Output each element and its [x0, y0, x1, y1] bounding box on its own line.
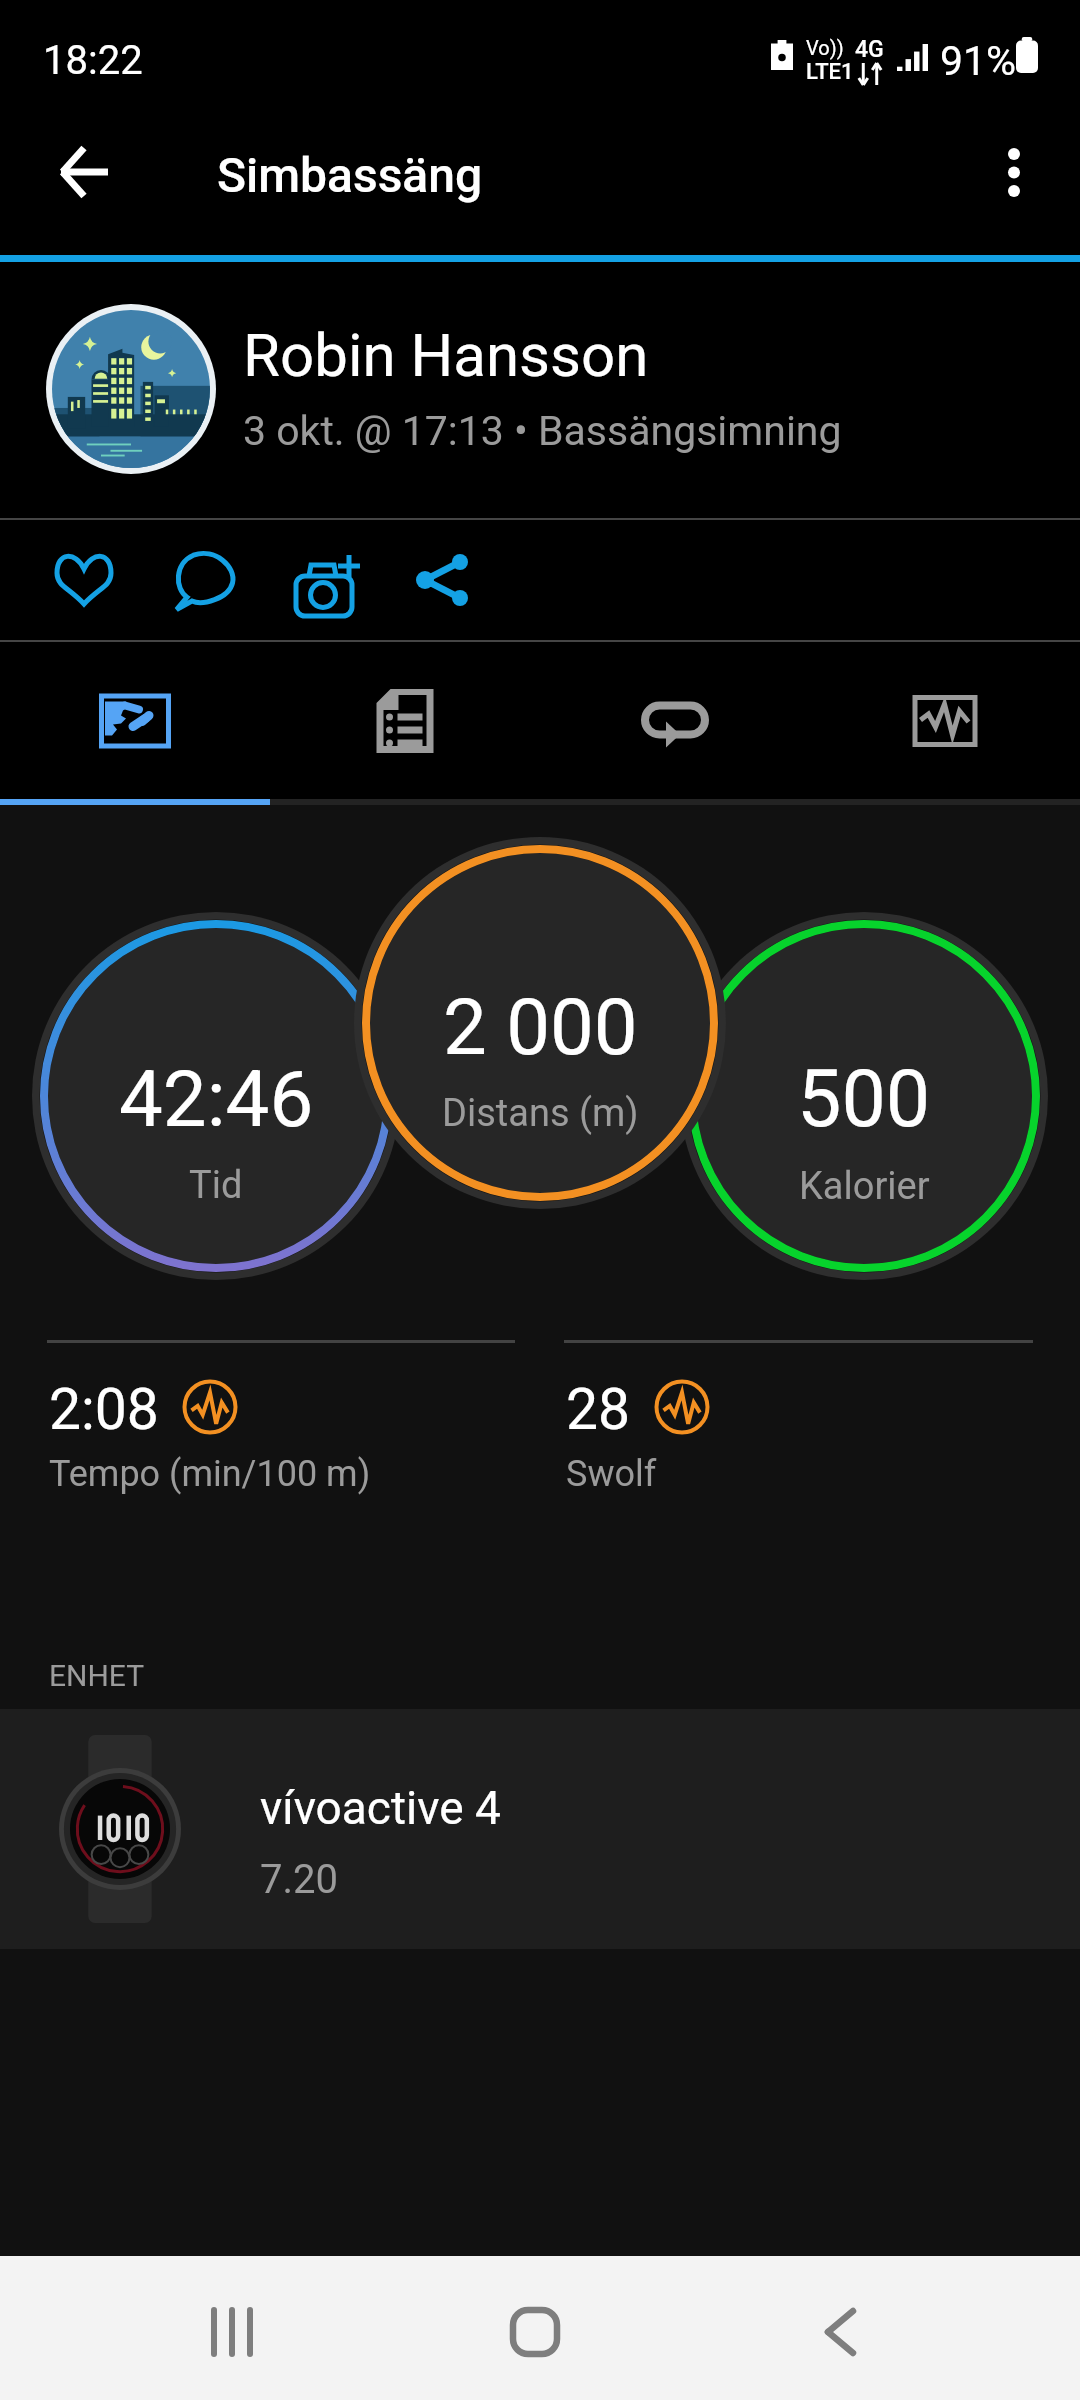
button[interactable]: Details — [270, 642, 540, 799]
staticText: 2:08 — [49, 1376, 159, 1443]
button[interactable]: Tid — [31, 911, 401, 1281]
staticText: 28 — [566, 1376, 631, 1443]
staticText: ENHET — [49, 1658, 145, 1693]
staticText: vívoactive 4 — [260, 1781, 501, 1835]
staticText: Kalorier — [799, 1164, 930, 1209]
button[interactable]: Back — [789, 2272, 909, 2392]
button[interactable]: Like — [24, 520, 144, 640]
staticText: Simbassäng — [217, 147, 483, 203]
staticText: LTE1 — [806, 59, 854, 85]
staticText: 91% — [940, 37, 1017, 85]
staticText: Tid — [189, 1163, 243, 1208]
staticText: 18:22 — [43, 37, 143, 84]
button[interactable]: Kalorier — [679, 911, 1049, 1281]
staticText: 4G — [855, 36, 884, 63]
button[interactable]: Home — [475, 2272, 595, 2392]
staticText: Swolf — [566, 1453, 657, 1495]
button[interactable]: Back — [24, 112, 144, 232]
staticText: Robin Hansson — [243, 320, 649, 390]
staticText: 2 000 — [443, 982, 638, 1073]
staticText: 42:46 — [119, 1054, 314, 1145]
staticText: Tempo (min/100 m) — [49, 1453, 371, 1495]
staticText: Vo)) — [806, 36, 844, 59]
button[interactable]: Charts — [810, 642, 1080, 799]
button[interactable]: Comment — [145, 520, 265, 640]
button[interactable]: More options — [954, 112, 1074, 232]
staticText: 7.20 — [260, 1856, 338, 1903]
button[interactable]: Laps — [540, 642, 810, 799]
staticText: 3 okt. @ 17:13 • Bassängsimning — [243, 407, 842, 455]
button[interactable]: Add photo — [265, 520, 385, 640]
button[interactable]: 2:08 — [47, 1340, 515, 1540]
button[interactable]: Map — [0, 642, 270, 799]
button[interactable]: Distans (m) — [353, 836, 727, 1210]
button[interactable]: Recent apps — [173, 2272, 293, 2392]
staticText: Distans (m) — [442, 1091, 639, 1136]
button[interactable]: Share — [383, 520, 503, 640]
button[interactable]: 28 — [564, 1340, 1033, 1540]
staticText: 500 — [797, 1053, 931, 1146]
button[interactable]: Robin Hansson — [0, 262, 1080, 518]
button[interactable]: vívoactive 4 — [0, 1709, 1080, 1949]
